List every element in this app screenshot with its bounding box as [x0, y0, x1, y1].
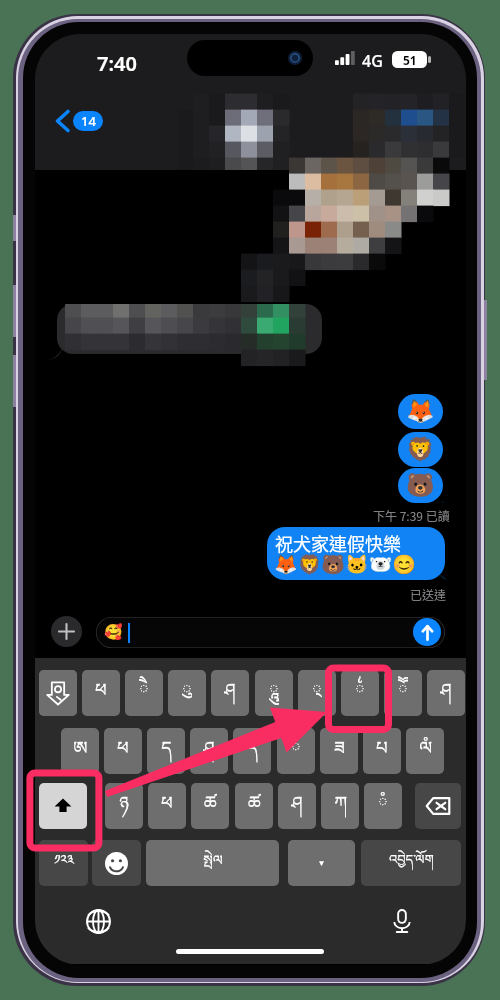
staticText: སྤེལ: [203, 844, 223, 883]
staticText: ཤ: [440, 670, 452, 716]
button[interactable]: ཀ: [321, 783, 359, 829]
staticText: 14: [81, 112, 96, 130]
staticText: ཚ: [204, 783, 217, 829]
button[interactable]: 🦊: [398, 394, 443, 429]
button[interactable]: ༡༢༣: [39, 840, 88, 886]
staticText: ཤ: [203, 728, 215, 774]
button[interactable]: ཾ: [364, 783, 402, 829]
button[interactable]: Change keyboard: [81, 904, 115, 938]
button[interactable]: ུ: [168, 670, 206, 716]
button[interactable]: ཱུ: [255, 670, 293, 716]
button[interactable]: ཻ: [125, 670, 163, 716]
button[interactable]: Add attachment: [51, 616, 82, 647]
button[interactable]: Emoji: [92, 840, 141, 886]
staticText: ད: [247, 728, 258, 774]
button[interactable]: འབྱེད་ལོག: [361, 840, 461, 886]
staticText: པ: [376, 728, 388, 774]
button[interactable]: ཤ: [190, 728, 228, 774]
button[interactable]: Insert: [39, 670, 77, 716]
button[interactable]: ཽ: [384, 670, 422, 716]
staticText: ཀ: [334, 783, 347, 829]
staticText: ཽ: [398, 670, 408, 716]
button[interactable]: ྄: [298, 670, 336, 716]
button[interactable]: ཕ: [104, 728, 142, 774]
staticText: ཟ: [334, 728, 345, 774]
button[interactable]: ཤ: [278, 783, 316, 829]
staticText: ཤ: [291, 783, 303, 829]
staticText: ལཾ: [419, 728, 432, 774]
staticText: 7:40: [97, 50, 137, 77]
button[interactable]: Back, 14 unread: [49, 102, 117, 140]
button[interactable]: ལཾ: [406, 728, 444, 774]
staticText: ཾ: [291, 728, 301, 774]
button[interactable]: ཚ: [191, 783, 229, 829]
button[interactable]: ྆: [341, 670, 379, 716]
button[interactable]: ཤ: [427, 670, 465, 716]
staticText: ད: [161, 728, 172, 774]
staticText: 已送達: [410, 586, 447, 603]
button[interactable]: ཨ: [61, 728, 99, 774]
staticText: ༡༢༣: [54, 845, 74, 882]
staticText: 祝犬家連假快樂: [275, 530, 401, 556]
button[interactable]: 🦁: [398, 432, 443, 467]
staticText: 下午 7:39 已讀: [373, 507, 450, 524]
staticText: ཕ: [161, 783, 173, 829]
button[interactable]: པ: [363, 728, 401, 774]
staticText: ཕ: [95, 670, 107, 716]
button[interactable]: Send: [413, 618, 441, 646]
staticText: ཉ: [119, 783, 129, 829]
staticText: 🦊: [406, 398, 435, 425]
staticText: ཤ: [224, 670, 236, 716]
button[interactable]: ཚ: [235, 783, 273, 829]
staticText: ▾: [319, 858, 324, 868]
staticText: ཚ: [248, 783, 261, 829]
staticText: ཕ: [117, 728, 129, 774]
button[interactable]: Backspace: [415, 783, 461, 829]
button[interactable]: ད: [147, 728, 185, 774]
staticText: 4G: [362, 50, 383, 72]
staticText: 🥰: [104, 623, 123, 641]
staticText: ྄: [312, 670, 322, 716]
button[interactable]: སྤེལ: [146, 840, 279, 886]
staticText: ཱུ: [269, 670, 279, 716]
button[interactable]: 🐻: [398, 468, 443, 503]
button[interactable]: ཟ: [320, 728, 358, 774]
staticText: ཻ: [139, 670, 149, 716]
button[interactable]: ཾ: [277, 728, 315, 774]
staticText: 🐻: [406, 472, 435, 499]
button[interactable]: Dictate: [385, 904, 419, 938]
button[interactable]: [39, 670, 77, 716]
staticText: 51: [403, 52, 417, 68]
staticText: ུ: [182, 670, 192, 716]
button[interactable]: 🥰: [96, 617, 445, 648]
button[interactable]: ད: [233, 728, 271, 774]
button[interactable]: ཕ: [82, 670, 120, 716]
staticText: ཾ: [378, 783, 388, 829]
button[interactable]: ཤ: [211, 670, 249, 716]
staticText: ྆: [355, 670, 365, 716]
button[interactable]: 祝犬家連假快樂: [267, 527, 445, 580]
button[interactable]: ▾: [288, 840, 355, 886]
staticText: ཨ: [73, 728, 88, 774]
staticText: 🦊🦁🐻🐱🐻‍❄️😊: [274, 553, 416, 575]
staticText: 🦁: [406, 436, 435, 463]
button[interactable]: Shift: [39, 783, 87, 829]
button[interactable]: ཉ: [105, 783, 143, 829]
staticText: འབྱེད་ལོག: [389, 845, 434, 882]
button[interactable]: ཕ: [148, 783, 186, 829]
